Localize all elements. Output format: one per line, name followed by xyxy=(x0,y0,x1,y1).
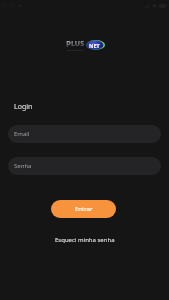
staticText: LUS xyxy=(71,39,84,49)
staticText: P xyxy=(66,38,71,49)
staticText: Login xyxy=(14,102,33,112)
staticText: NET xyxy=(89,42,100,49)
staticText: Esqueci minha senha xyxy=(55,236,115,244)
staticText: telecomunicacoes xyxy=(67,49,84,52)
button[interactable]: Esqueci minha senha xyxy=(49,233,121,247)
staticText: Senha xyxy=(14,162,32,170)
staticText: Email xyxy=(14,130,30,138)
button[interactable]: Email xyxy=(8,125,161,143)
button[interactable]: Entrar xyxy=(51,200,116,218)
staticText: Entrar xyxy=(75,205,93,213)
button[interactable]: Senha xyxy=(8,157,161,175)
